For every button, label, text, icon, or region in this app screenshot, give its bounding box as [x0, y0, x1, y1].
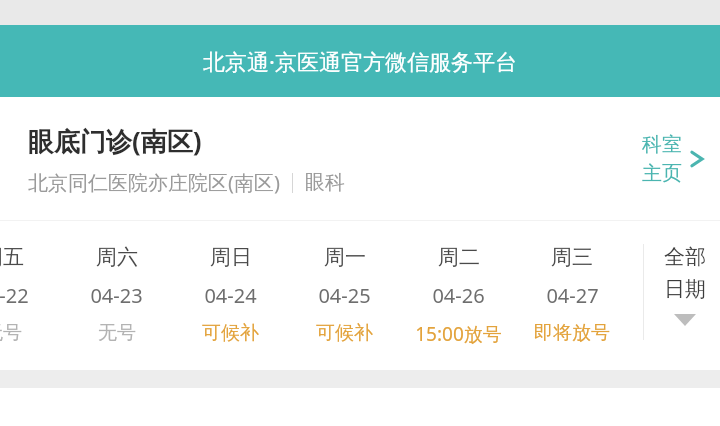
button[interactable]: 全部 — [650, 222, 720, 370]
button[interactable]: 周一 — [287, 222, 401, 370]
staticText: 科室 — [642, 132, 682, 157]
staticText: 04-23 — [90, 282, 143, 309]
button[interactable]: 周六 — [59, 222, 173, 370]
button[interactable]: 周日 — [173, 222, 287, 370]
button[interactable]: 周五 — [0, 222, 59, 370]
staticText: 全部 — [664, 244, 706, 270]
staticText: 周日 — [210, 244, 252, 270]
staticText: 04-22 — [0, 282, 29, 309]
staticText: 周六 — [96, 244, 138, 270]
staticText: 即将放号 — [534, 321, 610, 345]
staticText: 04-26 — [432, 282, 485, 309]
staticText: 15:00放号 — [415, 321, 502, 347]
staticText: 04-25 — [318, 282, 371, 309]
staticText: 可候补 — [316, 321, 373, 345]
staticText: 日期 — [664, 276, 706, 302]
staticText: 周三 — [551, 244, 593, 270]
other: Expand all dates — [674, 314, 696, 326]
staticText: 无号 — [98, 321, 136, 345]
staticText: 眼底门诊(南区) — [28, 123, 202, 159]
staticText: 无号 — [0, 321, 22, 345]
staticText: 主页 — [642, 161, 682, 186]
staticText: 周一 — [324, 244, 366, 270]
button[interactable]: 周三 — [515, 222, 629, 370]
staticText: 周二 — [438, 244, 480, 270]
staticText: 眼科 — [305, 170, 345, 195]
button[interactable]: 科室 — [636, 126, 712, 192]
staticText: 04-27 — [546, 282, 599, 309]
staticText: 北京通·京医通官方微信服务平台 — [203, 46, 517, 76]
button[interactable]: 周二 — [401, 222, 515, 370]
staticText: 可候补 — [202, 321, 259, 345]
staticText: 04-24 — [204, 282, 257, 309]
staticText: 北京同仁医院亦庄院区(南区) — [28, 169, 280, 196]
other: Open department homepage — [688, 146, 706, 172]
staticText: 周五 — [0, 244, 24, 270]
